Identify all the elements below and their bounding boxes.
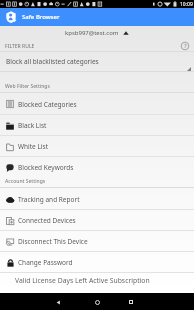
button[interactable]: Block all blacklisted categories <box>0 52 194 72</box>
staticText: Tracking and Report <box>18 195 80 204</box>
button[interactable]: Disconnect This Device <box>0 231 194 252</box>
staticText: Black List <box>18 121 47 130</box>
staticText: Web Filter Settings <box>5 83 50 90</box>
button[interactable]: Home <box>89 294 105 310</box>
button[interactable]: Change Password <box>0 252 194 273</box>
button[interactable]: Black List <box>0 115 194 136</box>
staticText: Blocked Keywords <box>18 163 74 172</box>
staticText: Valid License Days Left Active Subscript… <box>15 276 150 285</box>
staticText: Block all blacklisted categories <box>6 57 99 66</box>
staticText: Disconnect This Device <box>18 237 88 246</box>
staticText: White List <box>18 142 48 151</box>
staticText: kpsb997@test.com <box>65 29 119 37</box>
button[interactable]: Back <box>50 294 66 310</box>
button[interactable]: Help <box>180 41 190 51</box>
staticText: Connected Devices <box>18 216 76 225</box>
button[interactable]: kpsb997@test.com <box>65 29 129 37</box>
button[interactable]: Connected Devices <box>0 210 194 231</box>
staticText: Account Settings <box>5 178 46 185</box>
button[interactable]: Tracking and Report <box>0 188 194 210</box>
staticText: ? <box>184 42 187 50</box>
staticText: FILTER RULE <box>5 43 35 50</box>
staticText: Blocked Categories <box>18 100 77 109</box>
button[interactable]: Blocked Categories <box>0 93 194 115</box>
button[interactable]: White List <box>0 136 194 157</box>
staticText: Change Password <box>18 258 73 267</box>
button[interactable]: Recent apps <box>123 294 139 310</box>
button[interactable]: Blocked Keywords <box>0 157 194 178</box>
staticText: Safe Browser <box>22 13 60 21</box>
staticText: 10:09 <box>180 1 193 8</box>
